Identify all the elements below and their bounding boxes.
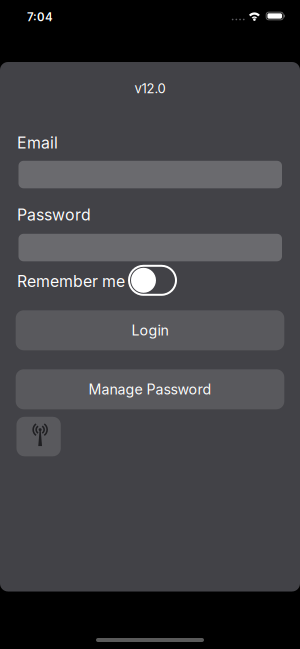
staticText: Email: [17, 133, 58, 152]
button[interactable]: Remember me: [129, 266, 176, 295]
staticText: Login: [131, 322, 168, 339]
staticText: 7:04: [27, 10, 53, 24]
staticText: Password: [17, 205, 91, 224]
button[interactable]: Manage Password: [16, 369, 284, 409]
staticText: Remember me: [17, 272, 125, 291]
button[interactable]: Login: [16, 310, 284, 350]
staticText: Manage Password: [88, 381, 211, 398]
button[interactable]: Network settings: [16, 417, 61, 456]
staticText: v12.0: [134, 80, 165, 96]
